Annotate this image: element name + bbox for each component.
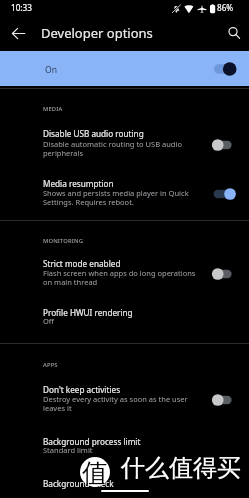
staticText: Background check: [43, 478, 114, 489]
staticText: 10:33: [11, 2, 32, 13]
staticText: 值: [82, 457, 108, 487]
button[interactable]: Background process limit: [0, 427, 249, 445]
staticText: MEDIA: [43, 105, 63, 113]
staticText: Profile HWUI rendering: [43, 307, 133, 318]
button[interactable]: Profile HWUI rendering: [0, 298, 249, 316]
button[interactable]: Media resumption: [0, 169, 249, 187]
staticText: On: [45, 64, 58, 76]
button[interactable]: Toggle off: [206, 265, 236, 283]
button[interactable]: Don't keep activities: [0, 375, 249, 393]
staticText: Strict mode enabled: [43, 258, 121, 269]
staticText: Media resumption: [43, 178, 114, 189]
staticText: Destroy every activity as soon as the us…: [43, 394, 188, 414]
staticText: Disable automatic routing to USB audio p…: [43, 139, 182, 159]
staticText: Developer options: [41, 24, 153, 42]
staticText: Shows and persists media player in Quick…: [43, 188, 189, 208]
button[interactable]: Toggle off: [206, 391, 236, 409]
staticText: 什么值得买: [121, 453, 241, 483]
staticText: Disable USB audio routing: [43, 128, 144, 139]
staticText: MONITORING: [43, 237, 84, 245]
staticText: Background process limit: [43, 436, 141, 447]
staticText: Don't keep activities: [43, 384, 121, 395]
button[interactable]: Strict mode enabled: [0, 249, 249, 267]
button[interactable]: Back: [7, 22, 29, 44]
staticText: Standard limit: [43, 445, 93, 455]
button[interactable]: Search: [222, 21, 246, 45]
staticText: APPS: [43, 361, 58, 369]
button[interactable]: Toggle on: [206, 185, 236, 203]
button[interactable]: Background check: [0, 469, 249, 487]
button[interactable]: Disable USB audio routing: [0, 119, 249, 137]
staticText: Flash screen when apps do long operation…: [43, 268, 196, 288]
staticText: Off: [43, 316, 55, 326]
button[interactable]: On: [0, 51, 249, 86]
button[interactable]: Toggle off: [206, 136, 236, 154]
staticText: 86%: [217, 2, 234, 13]
